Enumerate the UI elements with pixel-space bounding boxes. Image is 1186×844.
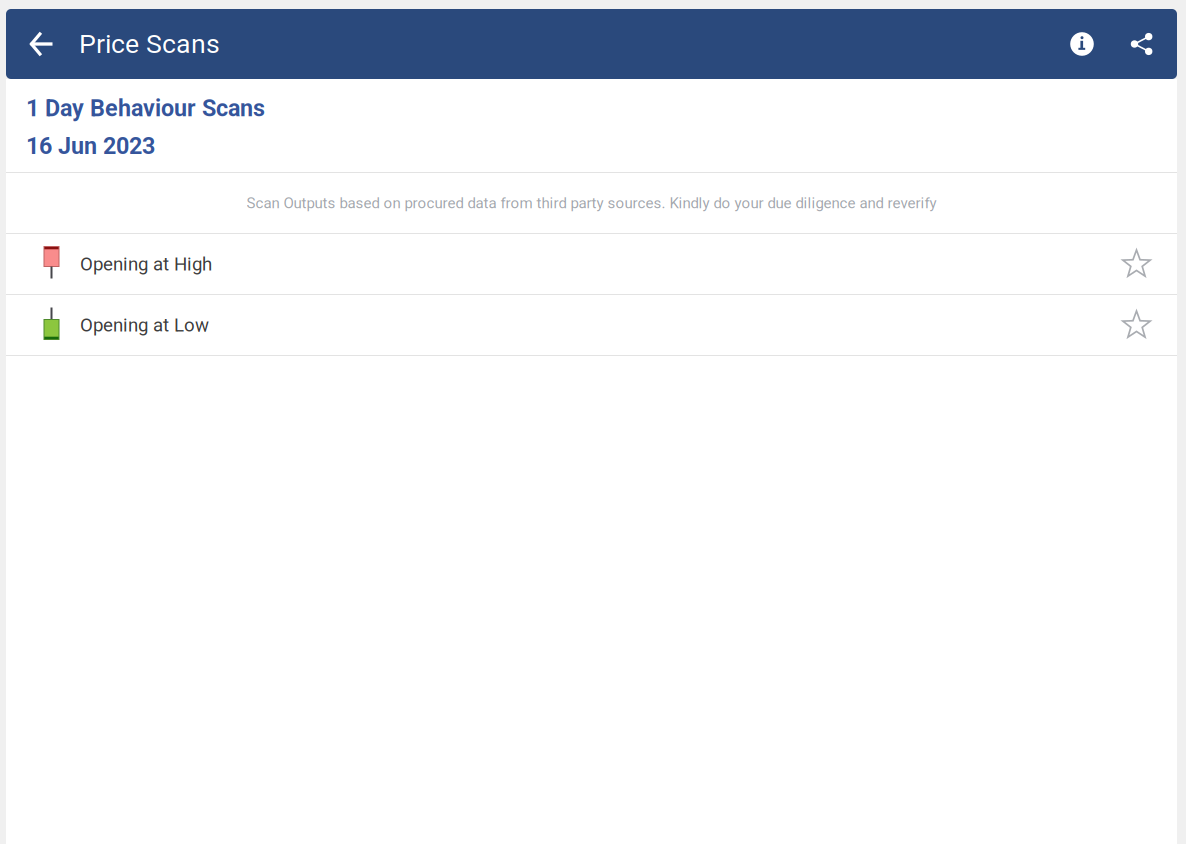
staticText: Opening at Low xyxy=(80,314,209,336)
button[interactable]: Opening at Low xyxy=(6,295,1177,355)
staticText: 1 Day Behaviour Scans xyxy=(26,94,265,122)
button[interactable]: Back xyxy=(15,9,67,79)
staticText: Scan Outputs based on procured data from… xyxy=(246,194,936,212)
button[interactable]: Opening at High xyxy=(6,234,1177,294)
button[interactable]: Share xyxy=(1117,9,1165,79)
button[interactable]: Information xyxy=(1058,9,1106,79)
staticText: 16 Jun 2023 xyxy=(26,132,155,160)
staticText: Opening at High xyxy=(80,253,212,275)
staticText: Price Scans xyxy=(79,28,220,60)
